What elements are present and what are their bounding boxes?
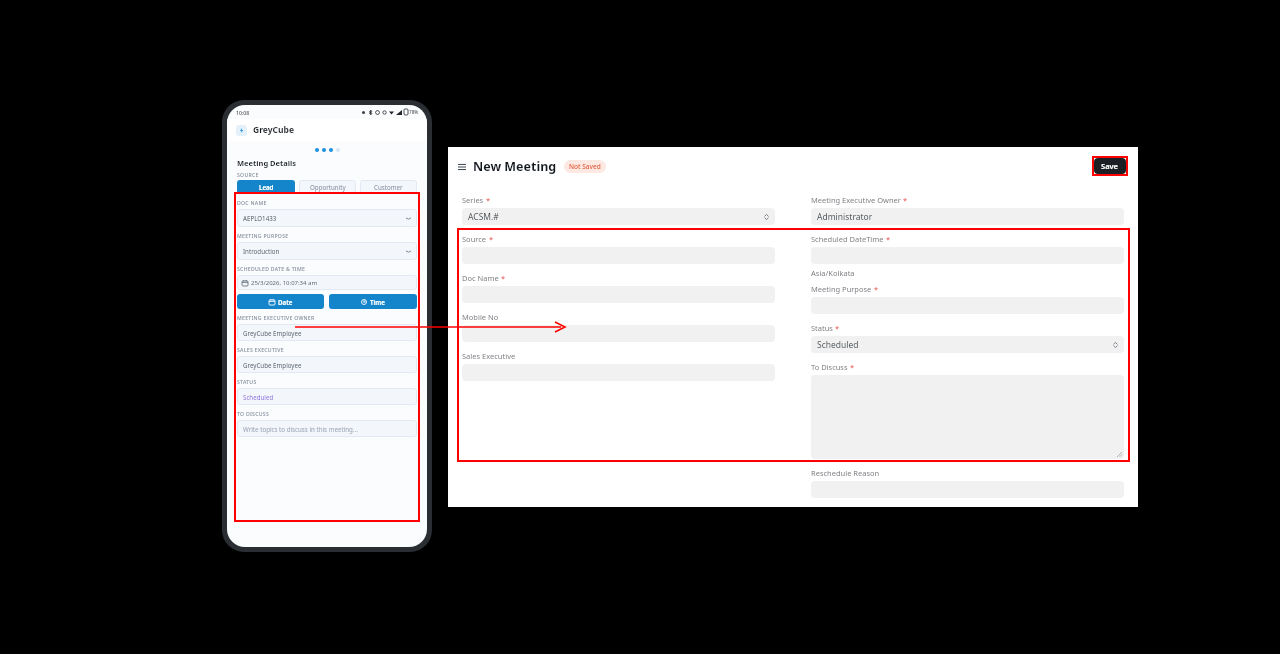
staticText: * (850, 362, 855, 372)
staticText: * (903, 195, 908, 205)
staticText: * (835, 323, 840, 333)
staticText: DOC NAME (237, 199, 267, 206)
button[interactable]: Scheduled (811, 336, 1124, 353)
staticText: SALES EXECUTIVE (237, 346, 284, 353)
button[interactable]: 25/3/2026, 10:07:34 am (237, 275, 417, 290)
staticText: Customer (374, 183, 403, 191)
button[interactable]: Write topics to discuss in this meeting.… (237, 420, 417, 437)
button[interactable]: Menu (457, 162, 467, 172)
staticText: SOURCE (237, 171, 259, 178)
staticText: TO DISCUSS (237, 410, 270, 417)
staticText: Meeting Details (237, 158, 297, 168)
staticText: Mobile No (462, 312, 499, 322)
staticText: New Meeting (473, 158, 557, 175)
staticText: Meeting Purpose (811, 284, 872, 294)
staticText: Opportunity (310, 183, 346, 191)
staticText: GreyCube Employee (243, 329, 302, 337)
staticText: Save (1101, 161, 1119, 171)
staticText: Meeting Executive Owner (811, 195, 901, 205)
staticText: Scheduled (817, 339, 859, 351)
button[interactable]: Date (237, 294, 324, 309)
button[interactable]: AEPLO1433 (237, 209, 417, 227)
staticText: Scheduled DateTime (811, 234, 884, 244)
staticText: Sales Executive (462, 351, 516, 361)
staticText: AEPLO1433 (243, 214, 277, 222)
button[interactable]: Time (329, 294, 417, 309)
button[interactable]: App logo (236, 125, 247, 136)
button[interactable]: ACSM.# (462, 208, 775, 225)
staticText: * (489, 234, 494, 244)
button[interactable]: Administrator (811, 208, 1124, 225)
staticText: MEETING PURPOSE (237, 232, 289, 239)
staticText: Not Saved (569, 162, 601, 171)
staticText: Status (811, 323, 833, 333)
button[interactable]: GreyCube Employee (237, 356, 417, 373)
staticText: 25/3/2026, 10:07:34 am (251, 279, 318, 287)
staticText: Scheduled (243, 393, 274, 401)
staticText: * (486, 195, 491, 205)
staticText: * (874, 284, 879, 294)
staticText: ACSM.# (468, 211, 499, 223)
staticText: MEETING EXECUTIVE OWNER (237, 314, 315, 321)
button[interactable]: Scheduled (237, 388, 417, 405)
staticText: Doc Name (462, 273, 499, 283)
staticText: Time (370, 298, 385, 306)
button[interactable]: Introduction (237, 242, 417, 260)
button[interactable]: Opportunity (299, 180, 356, 194)
staticText: 10:08 (236, 109, 250, 116)
button[interactable]: Save (1094, 158, 1126, 174)
staticText: Date (278, 298, 293, 306)
staticText: Lead (259, 183, 274, 191)
staticText: To Discuss (811, 362, 848, 372)
staticText: Asia/Kolkata (811, 268, 855, 278)
staticText: Series (462, 195, 484, 205)
staticText: Reschedule Reason (811, 468, 880, 478)
staticText: * (501, 273, 506, 283)
staticText: Write topics to discuss in this meeting.… (243, 425, 358, 433)
staticText: Administrator (817, 211, 873, 223)
button[interactable]: Lead (237, 180, 295, 194)
staticText: GreyCube Employee (243, 361, 302, 369)
button[interactable]: GreyCube Employee (237, 324, 417, 341)
staticText: Source (462, 234, 487, 244)
staticText: STATUS (237, 378, 257, 385)
staticText: Introduction (243, 247, 280, 255)
staticText: GreyCube (253, 124, 294, 136)
button[interactable] (462, 325, 775, 342)
staticText: 78% (409, 109, 419, 115)
staticText: SCHEDULED DATE & TIME (237, 265, 306, 272)
button[interactable]: Customer (360, 180, 417, 194)
staticText: * (886, 234, 891, 244)
